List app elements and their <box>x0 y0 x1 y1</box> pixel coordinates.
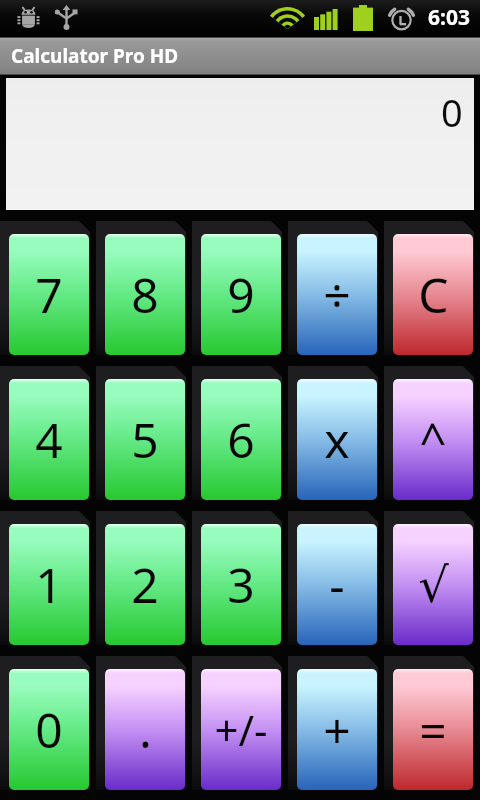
button[interactable]: 4 <box>9 379 89 500</box>
staticText: 3 <box>227 552 255 617</box>
staticText: 6:03 <box>428 3 470 32</box>
button[interactable]: + <box>297 669 377 790</box>
button[interactable]: √ <box>393 524 473 645</box>
button[interactable]: 9 <box>201 234 281 355</box>
button[interactable]: ^ <box>393 379 473 500</box>
staticText: 8 <box>131 262 159 327</box>
staticText: 9 <box>227 262 255 327</box>
button[interactable]: +/- <box>201 669 281 790</box>
button[interactable]: C <box>393 234 473 355</box>
staticText: 4 <box>35 407 63 472</box>
staticText: . <box>139 697 152 762</box>
staticText: + <box>323 697 351 762</box>
button[interactable]: 5 <box>105 379 185 500</box>
button[interactable]: x <box>297 379 377 500</box>
button[interactable]: - <box>297 524 377 645</box>
staticText: - <box>329 552 345 617</box>
button[interactable]: 7 <box>9 234 89 355</box>
staticText: ^ <box>419 407 447 472</box>
staticText: 1 <box>35 552 63 617</box>
staticText: 7 <box>35 262 63 327</box>
staticText: 2 <box>131 552 159 617</box>
staticText: 6 <box>227 407 255 472</box>
staticText: √ <box>418 557 449 613</box>
button[interactable]: 2 <box>105 524 185 645</box>
staticText: +/- <box>214 701 268 758</box>
staticText: Calculator Pro HD <box>11 43 179 69</box>
button[interactable]: = <box>393 669 473 790</box>
staticText: 0 <box>441 86 463 138</box>
button[interactable]: 0 <box>9 669 89 790</box>
button[interactable]: ÷ <box>297 234 377 355</box>
button[interactable]: 3 <box>201 524 281 645</box>
button[interactable]: 1 <box>9 524 89 645</box>
button[interactable]: 8 <box>105 234 185 355</box>
staticText: 5 <box>131 407 159 472</box>
button[interactable]: 6 <box>201 379 281 500</box>
staticText: C <box>418 262 449 327</box>
staticText: 0 <box>35 697 63 762</box>
button[interactable]: . <box>105 669 185 790</box>
staticText: ÷ <box>323 262 351 327</box>
staticText: x <box>324 407 350 472</box>
staticText: = <box>419 697 447 762</box>
